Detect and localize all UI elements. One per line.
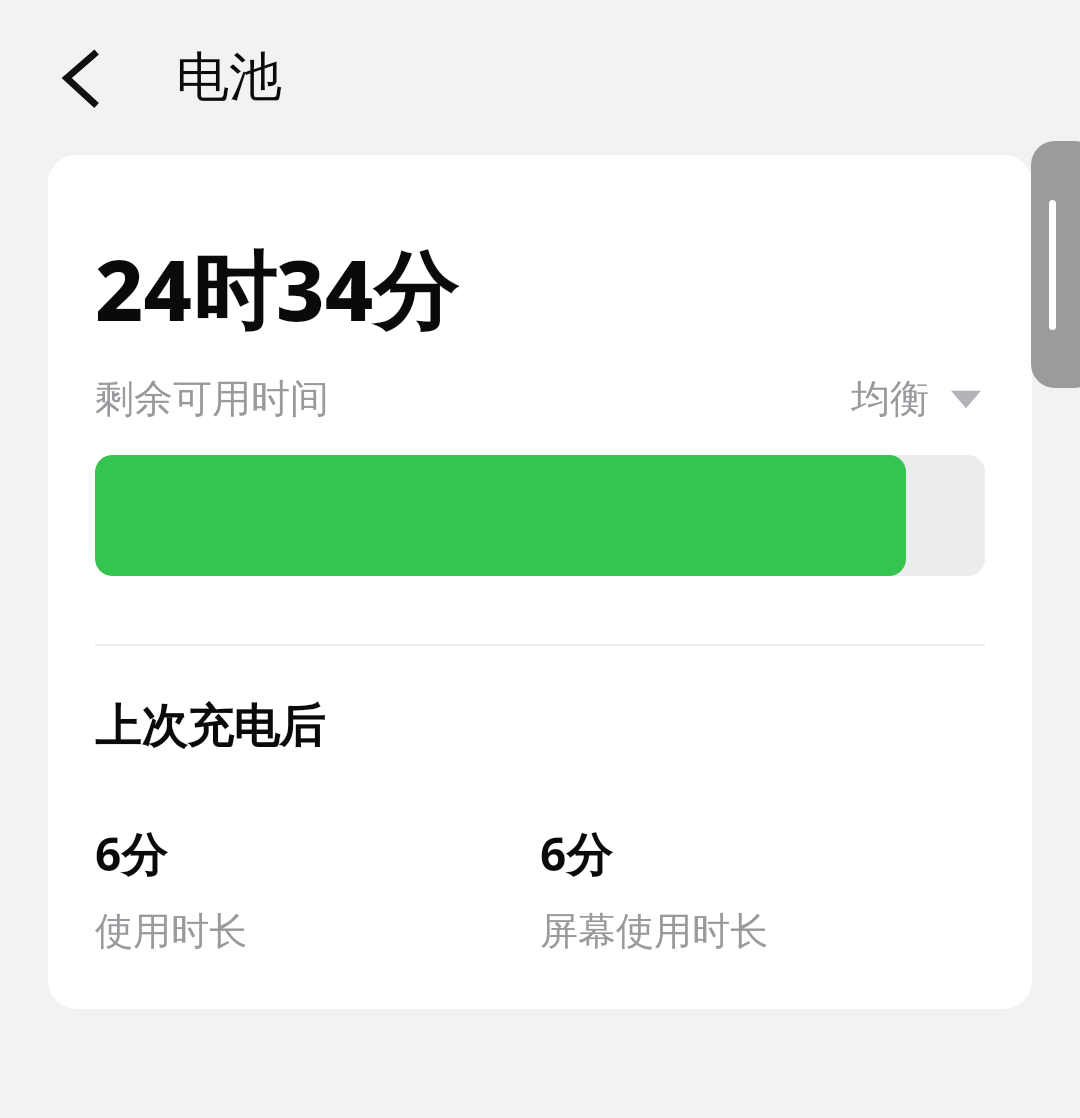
staticText: 剩余可用时间 — [95, 374, 329, 423]
staticText: 6分 — [540, 822, 613, 885]
staticText: 上次充电后 — [95, 698, 325, 756]
button[interactable]: 6分 — [540, 822, 985, 955]
staticText: 使用时长 — [95, 907, 247, 955]
button[interactable]: Back — [48, 42, 120, 114]
button[interactable]: 均衡 — [847, 370, 987, 427]
staticText: 均衡 — [851, 374, 929, 423]
button[interactable]: 6分 — [95, 822, 540, 955]
staticText: 24时34分 — [95, 231, 458, 346]
staticText: 屏幕使用时长 — [540, 907, 768, 955]
button[interactable]: 24时34分 — [48, 155, 1032, 1009]
staticText: 6分 — [95, 822, 168, 885]
staticText: 电池 — [176, 44, 282, 111]
button[interactable]: Scroll — [1031, 141, 1080, 388]
